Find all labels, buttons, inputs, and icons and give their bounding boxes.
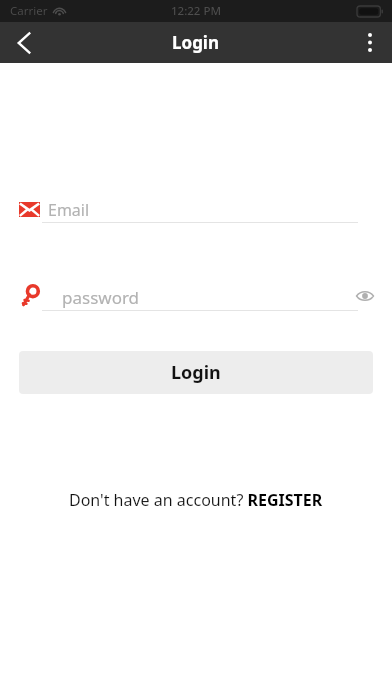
button[interactable]: More options [348,22,392,63]
button[interactable]: Show password [350,284,380,308]
staticText: Login [171,360,221,385]
button[interactable]: Back [0,22,48,63]
staticText: 12:22 PM [171,3,222,19]
staticText: Login [172,31,220,54]
button[interactable]: Don't have an account? REGISTER [61,485,331,515]
staticText: Don't have an account? REGISTER [69,489,323,511]
staticText: Email [48,199,90,221]
staticText: password [62,286,140,309]
staticText: Carrier [10,3,48,19]
button[interactable]: Login [19,351,373,394]
button[interactable]: password [0,282,392,310]
button[interactable]: Email [0,196,392,222]
